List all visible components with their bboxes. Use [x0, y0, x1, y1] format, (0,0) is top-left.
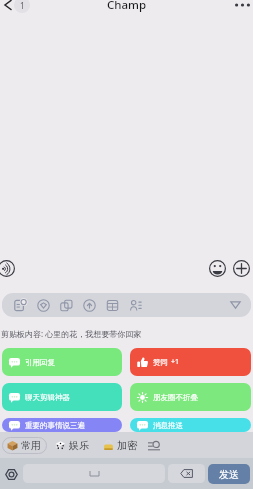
- staticText: 剪贴板内容: 心里的花，我想要带你回家: [1, 328, 142, 339]
- button[interactable]: Copy: [55, 294, 78, 316]
- button[interactable]: [23, 464, 165, 483]
- staticText: +1: [171, 357, 180, 367]
- button[interactable]: Info: [78, 294, 101, 316]
- button[interactable]: Switch keyboard: [3, 464, 19, 484]
- button[interactable]: 重要的事情说三遍: [2, 418, 122, 432]
- staticText: 常用: [21, 439, 41, 452]
- button[interactable]: Contacts: [124, 294, 147, 316]
- staticText: 加密: [117, 439, 137, 452]
- button[interactable]: Back: [0, 0, 32, 13]
- button[interactable]: Voice input: [0, 258, 17, 279]
- staticText: 赞同: [153, 358, 168, 367]
- button[interactable]: 聊天剪辑神器: [2, 383, 122, 411]
- button[interactable]: 消息推送: [130, 418, 251, 432]
- staticText: 1: [20, 0, 25, 11]
- button[interactable]: More options: [231, 0, 253, 13]
- button[interactable]: Tab settings: [145, 436, 163, 454]
- staticText: 重要的事情说三遍: [25, 421, 85, 430]
- button[interactable]: Add: [229, 257, 253, 279]
- button[interactable]: 娱乐: [50, 437, 95, 454]
- staticText: Champ: [107, 0, 147, 13]
- staticText: 消息推送: [153, 421, 183, 430]
- staticText: 引用回复: [25, 358, 55, 367]
- button[interactable]: Calendar: [101, 294, 124, 316]
- staticText: 朋友圈不折叠: [153, 393, 198, 402]
- staticText: 聊天剪辑神器: [25, 393, 70, 402]
- button[interactable]: 引用回复: [2, 348, 122, 376]
- button[interactable]: Collapse panel: [226, 296, 244, 314]
- button[interactable]: Shield: [32, 294, 55, 316]
- button[interactable]: 赞同: [130, 348, 251, 376]
- button[interactable]: 发送: [208, 464, 250, 484]
- button[interactable]: 加密: [98, 437, 143, 454]
- button[interactable]: Backspace: [168, 464, 205, 483]
- button[interactable]: Clipboard: [9, 294, 32, 316]
- button[interactable]: 常用: [2, 437, 47, 454]
- staticText: 娱乐: [69, 439, 89, 452]
- other: Back: [0, 0, 16, 12]
- button[interactable]: Emoji: [205, 257, 229, 279]
- staticText: 发送: [219, 468, 239, 481]
- button[interactable]: 朋友圈不折叠: [130, 383, 251, 411]
